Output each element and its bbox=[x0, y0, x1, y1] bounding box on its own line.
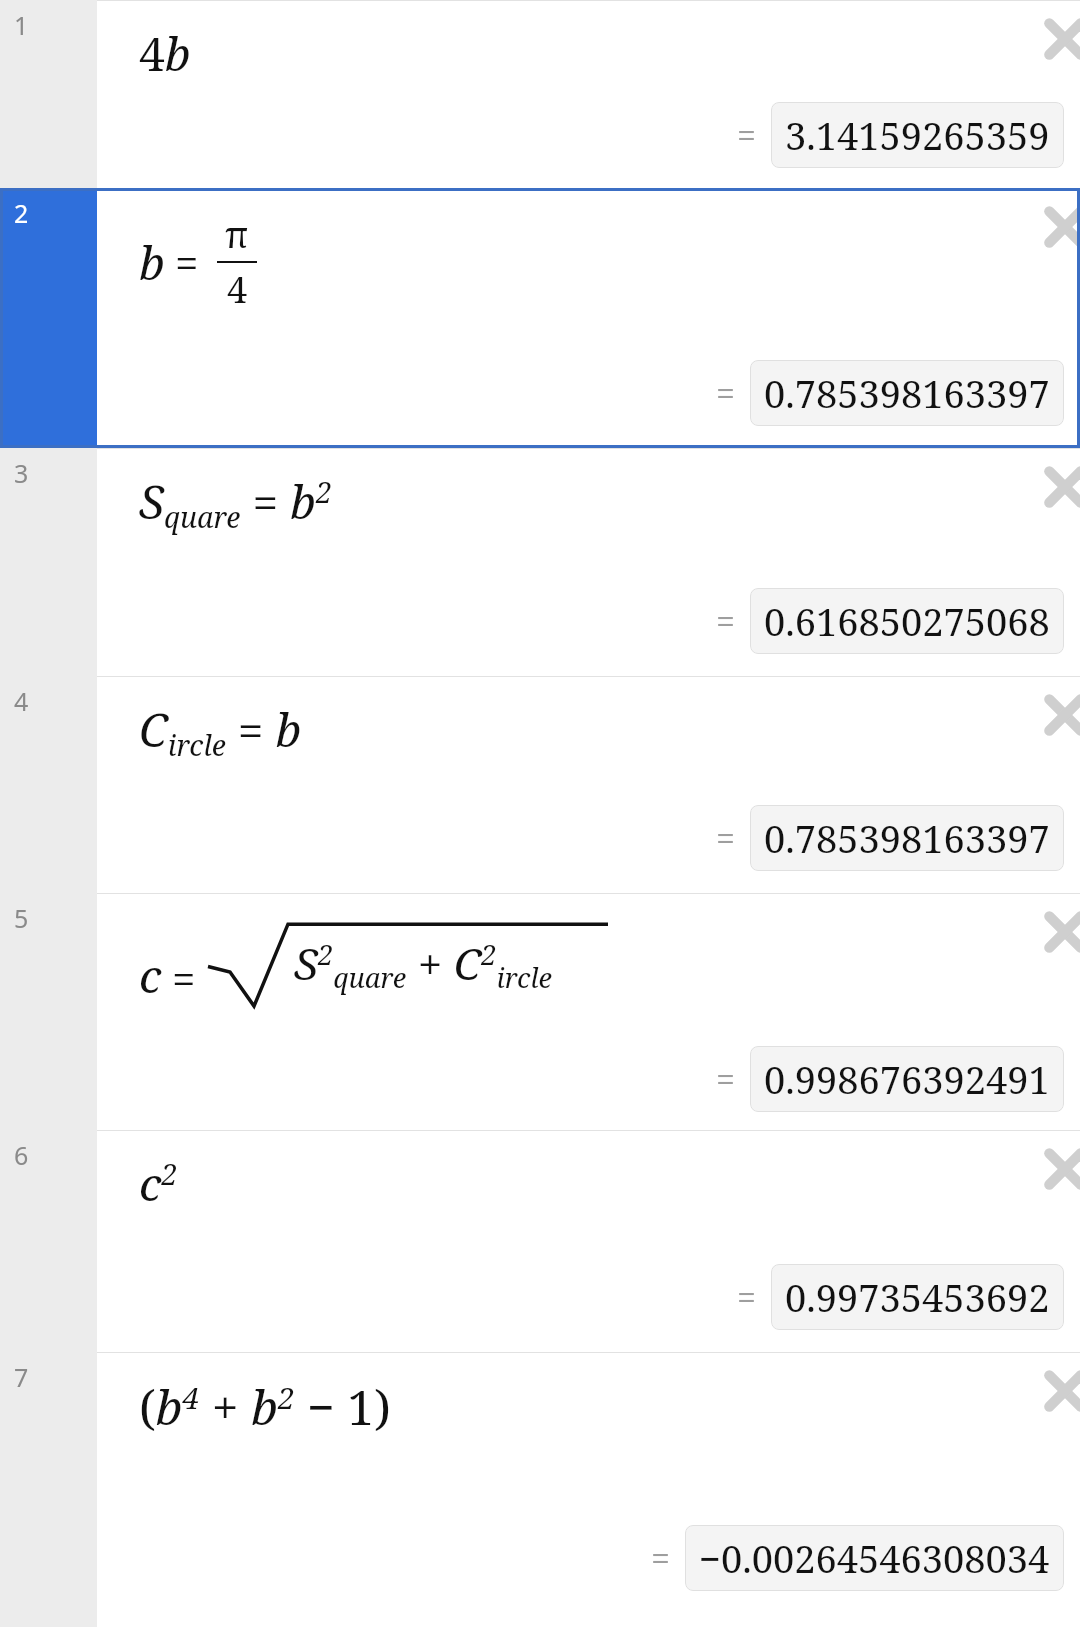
staticText: Square = b2 bbox=[139, 470, 332, 536]
staticText: = bbox=[716, 370, 736, 416]
button[interactable]: 0.99735453692 bbox=[771, 1264, 1064, 1330]
staticText: 0.616850275068 bbox=[764, 595, 1050, 647]
staticText: = bbox=[737, 1274, 757, 1320]
staticText: = bbox=[716, 598, 736, 644]
staticText: 1 bbox=[14, 8, 29, 42]
staticText: (b4 + b2 − 1) bbox=[139, 1374, 391, 1439]
staticText: 0.998676392491 bbox=[764, 1053, 1050, 1105]
staticText: S2quare + C2ircle bbox=[294, 933, 553, 996]
staticText: c bbox=[139, 944, 162, 1007]
staticText: 0.99735453692 bbox=[785, 1271, 1050, 1323]
button[interactable]: 6 bbox=[0, 1130, 1080, 1352]
staticText: Circle = b bbox=[139, 698, 302, 764]
staticText: = bbox=[737, 112, 757, 158]
staticText: 0.785398163397 bbox=[764, 367, 1050, 419]
staticText: 5 bbox=[14, 901, 29, 935]
button[interactable]: 7 bbox=[0, 1352, 1080, 1627]
button[interactable]: −0.00264546308034 bbox=[685, 1525, 1064, 1591]
staticText: 4 bbox=[14, 684, 29, 718]
button[interactable]: Delete expression bbox=[1034, 1360, 1080, 1422]
button[interactable]: 0.616850275068 bbox=[750, 588, 1064, 654]
staticText: b bbox=[139, 231, 165, 294]
button[interactable]: Delete expression bbox=[1034, 456, 1080, 518]
button[interactable]: 0.998676392491 bbox=[750, 1046, 1064, 1112]
staticText: c2 bbox=[139, 1152, 178, 1215]
staticText: = bbox=[175, 234, 199, 291]
staticText: 3.14159265359 bbox=[785, 109, 1050, 161]
staticText: −0.00264546308034 bbox=[699, 1532, 1050, 1584]
button[interactable]: 3.14159265359 bbox=[771, 102, 1064, 168]
staticText: 0.785398163397 bbox=[764, 812, 1050, 864]
button[interactable]: 0.785398163397 bbox=[750, 805, 1064, 871]
staticText: = bbox=[716, 1056, 736, 1102]
button[interactable]: 4 bbox=[0, 676, 1080, 893]
staticText: π bbox=[225, 210, 249, 259]
button[interactable]: 2 bbox=[0, 188, 1080, 448]
button[interactable]: 5 bbox=[0, 893, 1080, 1130]
button[interactable]: 3 bbox=[0, 448, 1080, 676]
staticText: 3 bbox=[14, 456, 29, 490]
staticText: 2 bbox=[14, 196, 29, 230]
button[interactable]: Delete expression bbox=[1034, 8, 1080, 70]
staticText: 4b bbox=[139, 22, 191, 85]
staticText: 4 bbox=[227, 265, 248, 314]
staticText: = bbox=[172, 950, 196, 1007]
staticText: 6 bbox=[14, 1138, 29, 1172]
button[interactable]: Delete expression bbox=[1034, 1138, 1080, 1200]
staticText: 7 bbox=[14, 1360, 29, 1394]
button[interactable]: Delete expression bbox=[1034, 901, 1080, 963]
button[interactable]: Delete expression bbox=[1034, 684, 1080, 746]
button[interactable]: Delete expression bbox=[1034, 196, 1080, 258]
staticText: = bbox=[716, 815, 736, 861]
button[interactable]: 0.785398163397 bbox=[750, 360, 1064, 426]
button[interactable]: 1 bbox=[0, 0, 1080, 188]
staticText: = bbox=[651, 1535, 671, 1581]
